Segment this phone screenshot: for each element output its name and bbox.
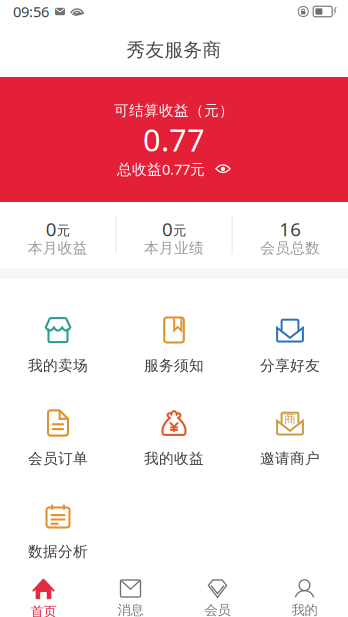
button[interactable]: 消息 bbox=[87, 562, 174, 617]
staticText: 我的卖场 bbox=[28, 356, 88, 374]
staticText: 秀友服务商 bbox=[126, 38, 221, 61]
button[interactable]: 我的卖场 bbox=[0, 279, 116, 372]
button[interactable]: 首页 bbox=[0, 562, 87, 617]
button[interactable]: 我的 bbox=[261, 562, 348, 617]
staticText: 会员总数 bbox=[260, 239, 320, 257]
staticText: 会员订单 bbox=[28, 449, 88, 467]
button[interactable]: 0 bbox=[0, 202, 115, 268]
staticText: 我的收益 bbox=[144, 449, 204, 467]
staticText: 可结算收益（元） bbox=[114, 101, 234, 119]
staticText: 首页 bbox=[30, 603, 56, 617]
staticText: 本月收益 bbox=[28, 239, 88, 257]
button[interactable]: 会员订单 bbox=[0, 372, 116, 465]
staticText: 会员 bbox=[204, 602, 230, 617]
staticText: 分享好友 bbox=[260, 356, 320, 374]
staticText: 元 bbox=[173, 222, 186, 239]
staticText: 数据分析 bbox=[28, 542, 88, 560]
staticText: 服务须知 bbox=[144, 356, 204, 374]
button[interactable]: 数据分析 bbox=[0, 465, 116, 558]
staticText: 商 bbox=[284, 412, 296, 426]
button[interactable]: 0 bbox=[116, 202, 232, 268]
staticText: 元 bbox=[57, 222, 70, 239]
button[interactable]: 分享好友 bbox=[232, 279, 348, 372]
staticText: 本月业绩 bbox=[144, 239, 204, 257]
staticText: 消息 bbox=[117, 602, 143, 617]
button[interactable]: 16 bbox=[233, 202, 348, 268]
staticText: 邀请商户 bbox=[260, 449, 320, 467]
button[interactable]: 我的收益 bbox=[116, 372, 232, 465]
staticText: 总收益0.77元 bbox=[117, 159, 205, 179]
button[interactable]: 总收益0.77元 bbox=[113, 153, 235, 177]
staticText: 0 bbox=[46, 217, 57, 241]
button[interactable]: 服务须知 bbox=[116, 279, 232, 372]
staticText: 16 bbox=[279, 217, 301, 241]
staticText: 0.77 bbox=[143, 119, 205, 160]
staticText: 0 bbox=[162, 217, 173, 241]
staticText: 我的 bbox=[291, 602, 317, 617]
button[interactable]: 会员 bbox=[174, 562, 261, 617]
button[interactable]: 商 bbox=[232, 372, 348, 465]
staticText: 09:56 bbox=[13, 2, 49, 21]
button[interactable]: 秀友服务商 bbox=[0, 23, 348, 77]
